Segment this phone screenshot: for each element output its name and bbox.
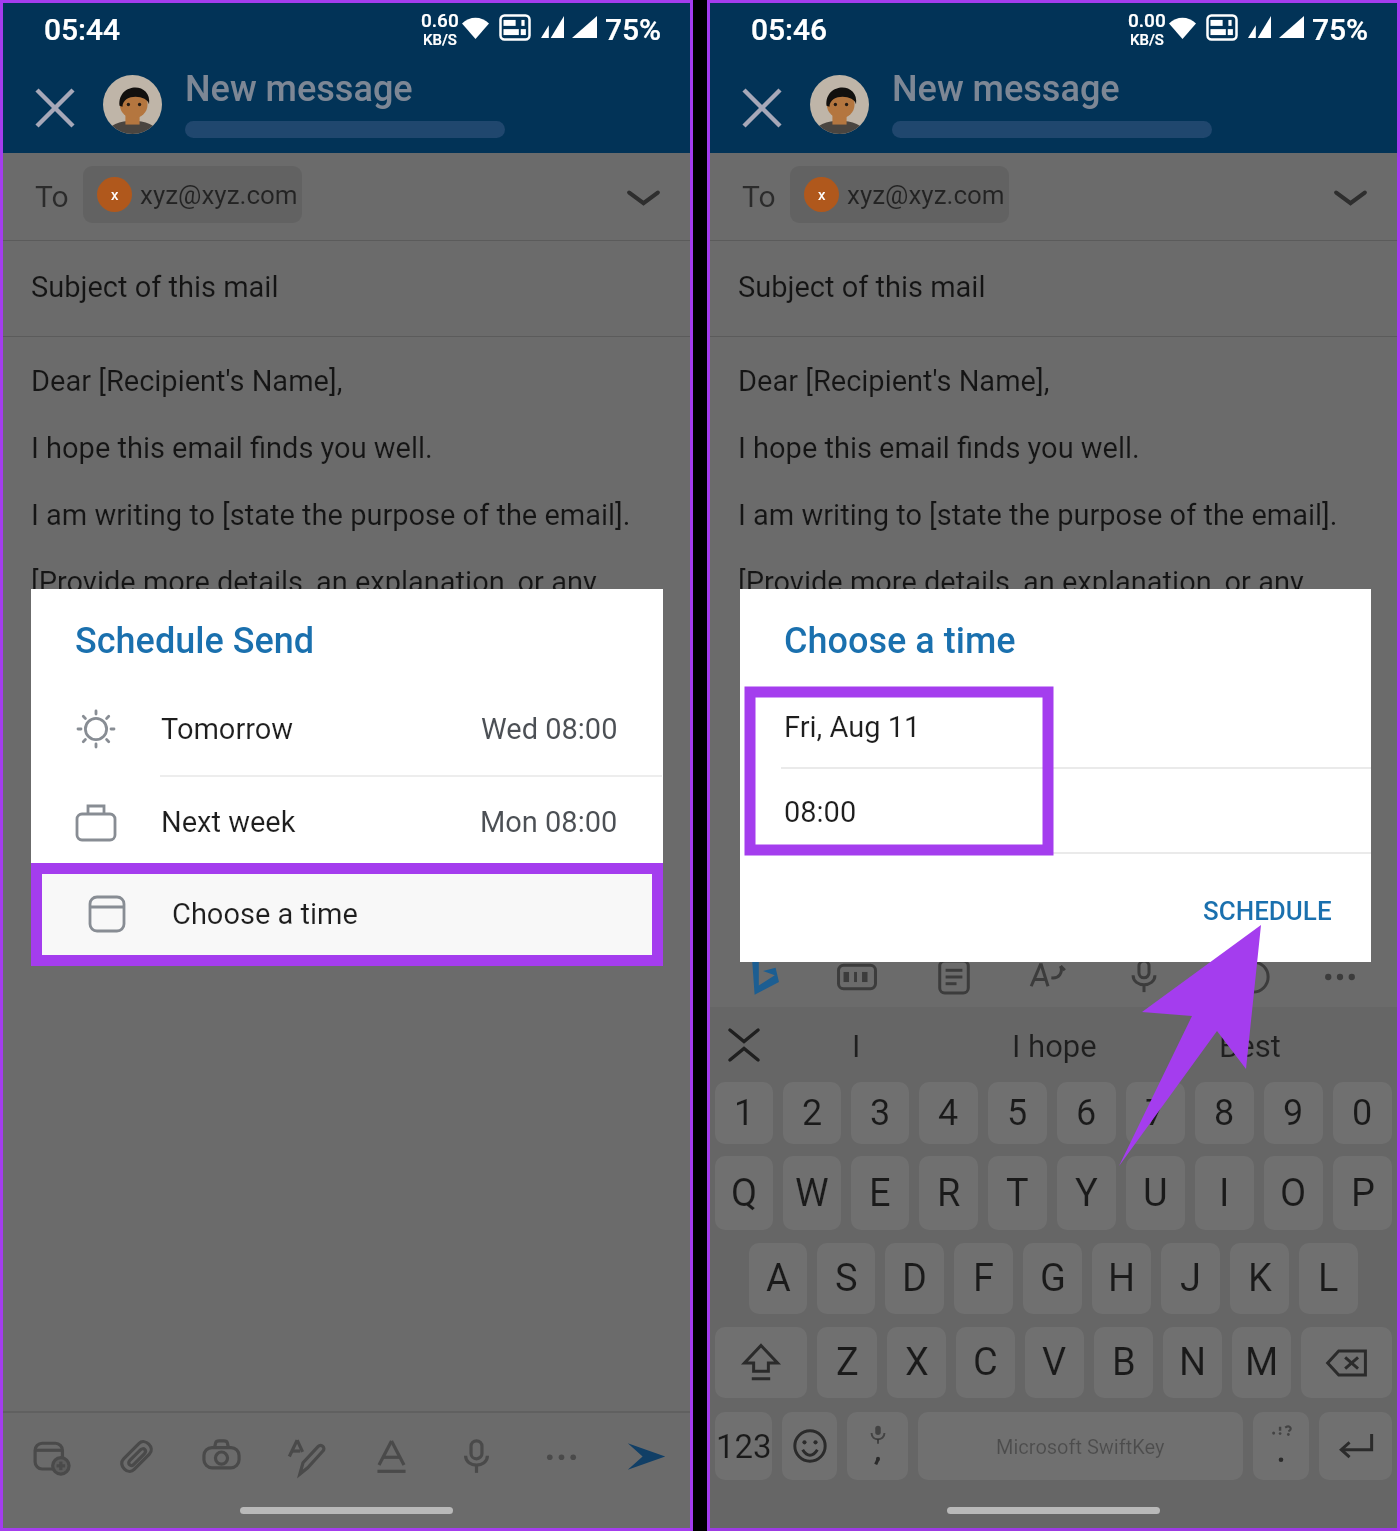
button[interactable]: N bbox=[1163, 1327, 1222, 1398]
staticText: I am writing to [state the purpose of th… bbox=[738, 498, 1338, 532]
button[interactable]: I bbox=[796, 1023, 916, 1069]
staticText: A bbox=[766, 1256, 791, 1301]
button[interactable]: I bbox=[1195, 1156, 1254, 1230]
button[interactable]: P bbox=[1333, 1156, 1392, 1230]
button[interactable]: Stickers bbox=[1223, 947, 1283, 1007]
button[interactable]: 1 bbox=[715, 1082, 773, 1144]
button[interactable]: J bbox=[1161, 1243, 1220, 1314]
button[interactable]: Format bbox=[349, 1414, 433, 1498]
button[interactable]: Next week bbox=[31, 782, 663, 862]
staticText: I hope this email finds you well. bbox=[31, 431, 433, 465]
button[interactable]: Send bbox=[604, 1414, 688, 1498]
staticText: Schedule Send bbox=[75, 620, 315, 662]
button[interactable]: Translate bbox=[1018, 947, 1078, 1007]
button[interactable]: Clipboard bbox=[924, 947, 984, 1007]
button[interactable]: Q bbox=[715, 1156, 773, 1230]
button[interactable]: More bbox=[1310, 947, 1370, 1007]
button[interactable]: U bbox=[1126, 1156, 1185, 1230]
staticText: I hope this email finds you well. bbox=[738, 431, 1140, 465]
button[interactable]: 8 bbox=[1195, 1082, 1254, 1144]
button[interactable]: Expand recipients bbox=[1323, 175, 1378, 219]
button[interactable]: Collapse keyboard bbox=[722, 1023, 766, 1067]
staticText: X bbox=[905, 1340, 929, 1385]
button[interactable]: 7 bbox=[1126, 1082, 1185, 1144]
button[interactable]: 5 bbox=[988, 1082, 1047, 1144]
button[interactable]: Camera bbox=[179, 1414, 263, 1498]
button[interactable]: Comma bbox=[847, 1412, 908, 1480]
button[interactable]: Emoji bbox=[782, 1412, 837, 1480]
staticText: E bbox=[869, 1171, 891, 1216]
button[interactable]: Draw bbox=[264, 1414, 348, 1498]
button[interactable]: Shift bbox=[715, 1327, 807, 1398]
button[interactable]: D bbox=[885, 1243, 944, 1314]
staticText: 0.60 bbox=[421, 9, 459, 31]
button[interactable]: B bbox=[1094, 1327, 1153, 1398]
button[interactable]: G bbox=[1023, 1243, 1082, 1314]
staticText: x bbox=[111, 186, 119, 204]
button[interactable]: 9 bbox=[1264, 1082, 1323, 1144]
button[interactable]: I hope bbox=[974, 1023, 1134, 1069]
button[interactable]: Close bbox=[736, 82, 788, 134]
button[interactable]: Backspace bbox=[1301, 1327, 1392, 1398]
staticText: 4 bbox=[938, 1092, 959, 1134]
button[interactable]: x bbox=[83, 166, 302, 223]
button[interactable]: O bbox=[1264, 1156, 1323, 1230]
button[interactable]: T bbox=[988, 1156, 1047, 1230]
button[interactable]: K bbox=[1230, 1243, 1289, 1314]
staticText: I hope bbox=[1012, 1028, 1097, 1064]
button[interactable]: Account bbox=[103, 75, 162, 134]
button[interactable]: L bbox=[1299, 1243, 1358, 1314]
staticText: x bbox=[818, 186, 826, 204]
button[interactable]: 123 bbox=[715, 1412, 772, 1480]
button[interactable]: 3 bbox=[851, 1082, 909, 1144]
button[interactable]: V bbox=[1025, 1327, 1084, 1398]
button[interactable]: SCHEDULE bbox=[1203, 883, 1353, 939]
button[interactable]: 2 bbox=[783, 1082, 841, 1144]
button[interactable]: Voice bbox=[1114, 947, 1174, 1007]
staticText: 1 bbox=[734, 1092, 755, 1134]
staticText: New message bbox=[185, 68, 413, 110]
button[interactable]: Tomorrow bbox=[31, 689, 663, 769]
button[interactable]: M bbox=[1232, 1327, 1291, 1398]
button[interactable]: Space bbox=[918, 1412, 1243, 1480]
button[interactable]: Attach bbox=[94, 1414, 178, 1498]
button[interactable]: C bbox=[956, 1327, 1015, 1398]
button[interactable]: 6 bbox=[1057, 1082, 1116, 1144]
button[interactable]: H bbox=[1092, 1243, 1151, 1314]
staticText: [Provide more details, an explanation, o… bbox=[738, 565, 1304, 599]
button[interactable]: W bbox=[783, 1156, 841, 1230]
button[interactable]: Expand recipients bbox=[616, 175, 671, 219]
button[interactable]: Period bbox=[1253, 1412, 1309, 1480]
button[interactable]: 4 bbox=[919, 1082, 978, 1144]
staticText: H bbox=[1108, 1256, 1136, 1301]
staticText: 6 bbox=[1076, 1092, 1097, 1134]
button[interactable]: S bbox=[817, 1243, 875, 1314]
button[interactable]: Bing bbox=[733, 947, 793, 1007]
button[interactable]: Z bbox=[817, 1327, 877, 1398]
button[interactable]: Account bbox=[810, 75, 869, 134]
button[interactable]: Enter bbox=[1319, 1412, 1392, 1480]
staticText: [Provide more details, an explanation, o… bbox=[31, 565, 597, 599]
button[interactable]: Insert event bbox=[9, 1414, 93, 1498]
button[interactable]: A bbox=[749, 1243, 807, 1314]
button[interactable]: Best bbox=[1170, 1023, 1330, 1069]
button[interactable]: R bbox=[919, 1156, 978, 1230]
button[interactable]: 0 bbox=[1333, 1082, 1392, 1144]
staticText: D bbox=[902, 1256, 927, 1301]
staticText: L bbox=[1318, 1256, 1339, 1301]
button[interactable]: More bbox=[519, 1414, 603, 1498]
staticText: 0 bbox=[1352, 1092, 1373, 1134]
button[interactable]: Y bbox=[1057, 1156, 1116, 1230]
button[interactable]: E bbox=[851, 1156, 909, 1230]
button[interactable]: F bbox=[954, 1243, 1013, 1314]
button[interactable]: GIF bbox=[827, 947, 887, 1007]
button[interactable]: Voice bbox=[434, 1414, 518, 1498]
button[interactable]: Close bbox=[29, 82, 81, 134]
button[interactable]: Fri, Aug 11 bbox=[740, 687, 1371, 767]
button[interactable]: 08:00 bbox=[740, 772, 1371, 852]
button[interactable]: X bbox=[887, 1327, 946, 1398]
button[interactable]: Choose a time bbox=[42, 874, 652, 954]
staticText: Dear [Recipient's Name], bbox=[738, 364, 1050, 398]
button[interactable]: x bbox=[790, 166, 1009, 223]
staticText: xyz@xyz.com bbox=[847, 180, 1005, 210]
